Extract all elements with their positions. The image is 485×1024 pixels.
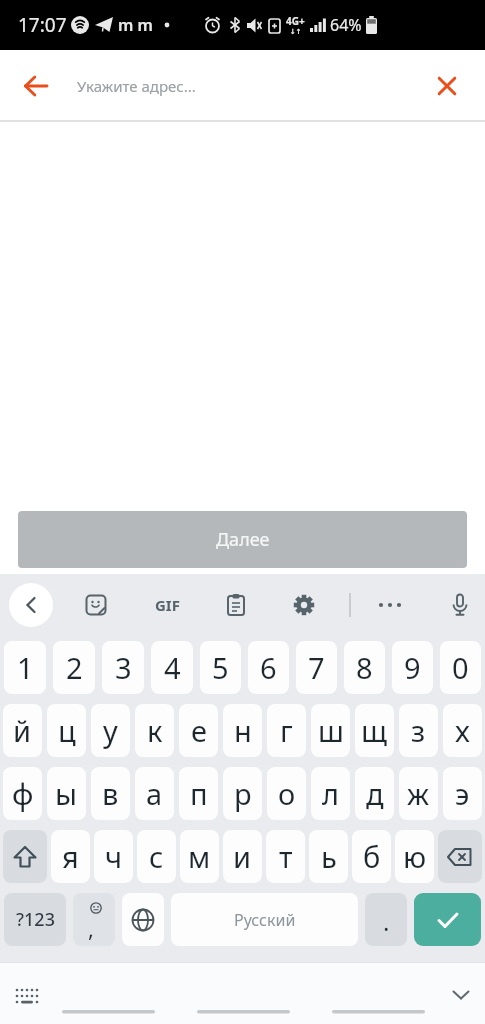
staticText: 6	[260, 648, 277, 687]
button[interactable]: р	[223, 767, 262, 820]
staticText: 8	[356, 648, 373, 687]
button[interactable]: .	[365, 893, 407, 946]
button[interactable]: щ	[355, 704, 394, 757]
button[interactable]: ф	[3, 767, 42, 820]
button[interactable]: ц	[47, 704, 86, 757]
button[interactable]: 0	[440, 641, 481, 694]
staticText: ф	[12, 774, 34, 813]
staticText: 7	[308, 648, 325, 687]
staticText: ч	[105, 837, 123, 876]
button[interactable]: ,	[73, 893, 115, 946]
button[interactable]	[378, 593, 402, 617]
button[interactable]: у	[91, 704, 130, 757]
button[interactable]: 1	[4, 641, 46, 694]
button[interactable]: ы	[47, 767, 86, 820]
button[interactable]: г	[267, 704, 306, 757]
button[interactable]: д	[355, 767, 394, 820]
button[interactable]	[425, 64, 469, 108]
staticText: п	[190, 774, 208, 813]
button[interactable]: GIF	[147, 588, 187, 622]
button[interactable]: 4	[151, 641, 193, 694]
button[interactable]	[448, 593, 472, 617]
button[interactable]	[13, 982, 41, 1010]
button[interactable]: 3	[102, 641, 144, 694]
button[interactable]: 7	[296, 641, 337, 694]
button[interactable]	[292, 593, 316, 617]
button[interactable]: ?123	[4, 893, 66, 946]
button[interactable]: я	[51, 830, 90, 883]
button[interactable]: 2	[53, 641, 95, 694]
staticText: в	[102, 774, 119, 813]
button[interactable]: Русский	[171, 893, 358, 946]
button[interactable]: ж	[399, 767, 438, 820]
staticText: Укажите адрес...	[77, 76, 196, 96]
button[interactable]	[84, 593, 108, 617]
button[interactable]	[9, 583, 53, 627]
button[interactable]: и	[223, 830, 262, 883]
staticText: ю	[403, 837, 427, 876]
button[interactable]	[438, 830, 482, 883]
staticText: й	[13, 711, 32, 750]
staticText: у	[103, 711, 118, 750]
button[interactable]: б	[352, 830, 391, 883]
button[interactable]	[224, 593, 248, 617]
button[interactable]: п	[179, 767, 218, 820]
staticText: с	[149, 837, 164, 876]
staticText: 9	[404, 648, 421, 687]
button[interactable]: 6	[248, 641, 289, 694]
staticText: д	[366, 774, 384, 813]
button[interactable]: м	[180, 830, 219, 883]
button[interactable]	[14, 64, 58, 108]
button[interactable]: ш	[311, 704, 350, 757]
button[interactable]	[3, 830, 47, 883]
staticText: ц	[58, 711, 76, 750]
staticText: 4G+	[286, 14, 305, 28]
button[interactable]: о	[267, 767, 306, 820]
button[interactable]: з	[399, 704, 438, 757]
button[interactable]: э	[443, 767, 482, 820]
button[interactable]: 9	[392, 641, 433, 694]
staticText: х	[455, 711, 470, 750]
button[interactable]: н	[223, 704, 262, 757]
button[interactable]: л	[311, 767, 350, 820]
staticText: а	[146, 774, 163, 813]
button[interactable]: а	[135, 767, 174, 820]
staticText: 1	[17, 648, 34, 687]
staticText: щ	[361, 711, 388, 750]
staticText: 0	[452, 648, 469, 687]
button[interactable]: 5	[200, 641, 241, 694]
staticText: э	[455, 774, 470, 813]
staticText: 3	[115, 648, 132, 687]
button[interactable]: й	[3, 704, 42, 757]
button[interactable]: с	[137, 830, 176, 883]
button[interactable]: т	[266, 830, 305, 883]
staticText: 2	[66, 648, 83, 687]
staticText: ?123	[16, 907, 55, 932]
staticText: 5	[212, 648, 229, 687]
staticText: m m	[118, 14, 153, 36]
staticText: з	[411, 711, 426, 750]
button[interactable]	[122, 893, 164, 946]
button[interactable]: в	[91, 767, 130, 820]
staticText: 64%	[330, 14, 362, 36]
staticText: и	[233, 837, 252, 876]
button[interactable]	[414, 893, 481, 946]
button[interactable]: е	[179, 704, 218, 757]
button[interactable]	[449, 983, 473, 1007]
staticText: ш	[318, 711, 344, 750]
button[interactable]: х	[443, 704, 482, 757]
button[interactable]: к	[135, 704, 174, 757]
staticText: Русский	[234, 909, 296, 931]
button[interactable]: ь	[309, 830, 348, 883]
button[interactable]: ч	[94, 830, 133, 883]
button[interactable]: Далее	[18, 511, 467, 568]
staticText: е	[191, 711, 207, 750]
staticText: р	[234, 774, 252, 813]
staticText: к	[147, 711, 163, 750]
staticText: т	[279, 837, 293, 876]
staticText: GIF	[155, 595, 180, 615]
staticText: ↓↑	[290, 28, 302, 36]
button[interactable]: 8	[344, 641, 385, 694]
button[interactable]: ю	[395, 830, 434, 883]
staticText: ь	[321, 837, 337, 876]
